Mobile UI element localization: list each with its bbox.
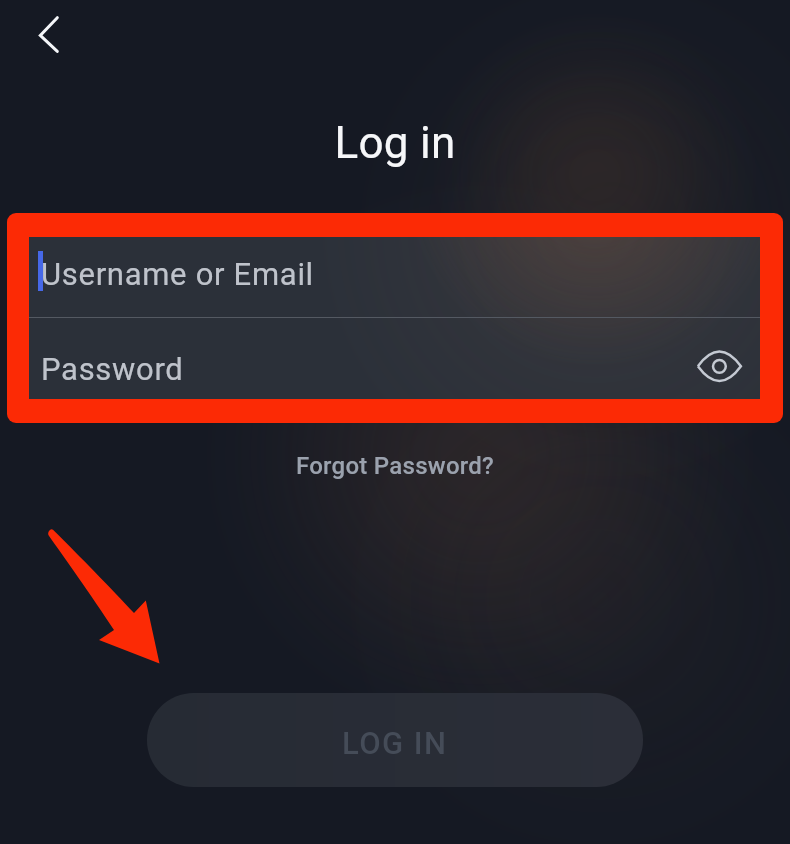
button[interactable]: Forgot Password? bbox=[0, 452, 790, 480]
staticText: LOG IN bbox=[342, 725, 448, 761]
staticText: Password bbox=[41, 351, 184, 387]
button[interactable]: LOG IN bbox=[147, 693, 643, 787]
staticText: Log in bbox=[0, 117, 790, 169]
staticText: Username or Email bbox=[41, 256, 314, 292]
button[interactable]: Password bbox=[29, 318, 760, 399]
button[interactable]: Back bbox=[23, 6, 79, 62]
button[interactable]: Username or Email bbox=[29, 237, 760, 317]
button[interactable]: Show password bbox=[695, 341, 743, 389]
